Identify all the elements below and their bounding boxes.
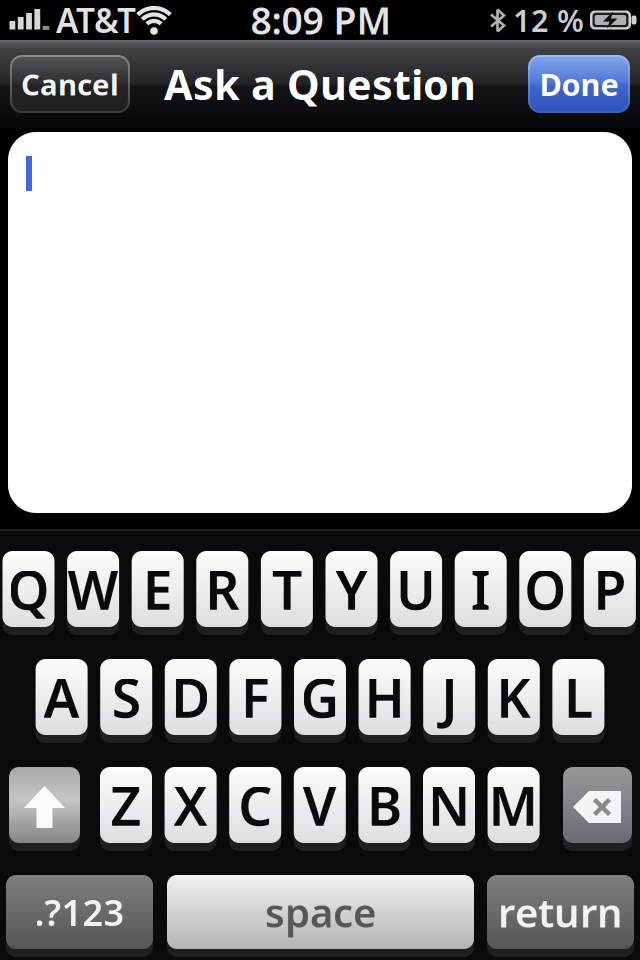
staticText: A [44, 662, 80, 732]
staticText: I [471, 554, 491, 624]
button[interactable]: T [261, 551, 313, 627]
button[interactable]: .?123 [6, 875, 153, 949]
staticText: 8:09 PM [250, 0, 391, 45]
staticText: K [496, 662, 531, 732]
staticText: E [143, 554, 173, 624]
staticText: G [300, 662, 339, 732]
staticText: space [265, 885, 376, 938]
staticText: X [174, 770, 208, 840]
button[interactable]: Shift [9, 767, 80, 843]
button[interactable]: return [487, 875, 634, 949]
button[interactable]: I [455, 551, 507, 627]
staticText: B [367, 770, 402, 840]
staticText: U [396, 554, 436, 624]
staticText: S [112, 662, 141, 732]
button[interactable]: E [132, 551, 184, 627]
button[interactable]: F [229, 659, 281, 735]
button[interactable]: Z [100, 767, 152, 843]
staticText: F [241, 662, 270, 732]
button[interactable]: N [423, 767, 475, 843]
button[interactable]: Cancel [10, 55, 130, 113]
button[interactable]: V [294, 767, 346, 843]
staticText: Cancel [21, 64, 119, 103]
staticText: Y [335, 554, 367, 624]
staticText: AT&T [56, 0, 136, 42]
button[interactable]: D [165, 659, 217, 735]
staticText: H [365, 662, 405, 732]
button[interactable]: B [358, 767, 410, 843]
staticText: P [593, 554, 626, 624]
button[interactable]: Q [2, 551, 54, 627]
button[interactable]: J [423, 659, 475, 735]
staticText: Ask a Question [164, 57, 476, 111]
button[interactable]: X [165, 767, 217, 843]
button[interactable]: Delete [563, 767, 632, 843]
button[interactable]: C [229, 767, 281, 843]
staticText: T [272, 554, 302, 624]
staticText: M [489, 770, 539, 840]
staticText: D [171, 662, 210, 732]
staticText: J [441, 662, 457, 732]
staticText: R [205, 554, 239, 624]
button[interactable]: Done [528, 55, 630, 113]
staticText: Done [539, 64, 618, 104]
button[interactable]: A [36, 659, 88, 735]
staticText: Q [7, 554, 49, 624]
button[interactable]: K [488, 659, 540, 735]
staticText: C [238, 770, 272, 840]
staticText: return [498, 885, 623, 938]
staticText: N [428, 770, 470, 840]
button[interactable]: U [390, 551, 442, 627]
button[interactable]: Y [325, 551, 377, 627]
button[interactable]: O [519, 551, 571, 627]
staticText: V [303, 770, 337, 840]
button[interactable]: L [552, 659, 604, 735]
staticText: .?123 [34, 888, 124, 936]
button[interactable]: R [196, 551, 248, 627]
button[interactable]: M [488, 767, 540, 843]
button[interactable]: S [100, 659, 152, 735]
button[interactable]: H [359, 659, 411, 735]
staticText: 12 % [513, 0, 584, 40]
staticText: W [68, 554, 119, 624]
button[interactable]: G [294, 659, 346, 735]
button[interactable]: P [584, 551, 636, 627]
staticText: L [564, 662, 593, 732]
button[interactable]: space [167, 875, 474, 949]
button[interactable]: W [67, 551, 119, 627]
staticText: O [524, 554, 566, 624]
staticText: Z [110, 770, 141, 840]
